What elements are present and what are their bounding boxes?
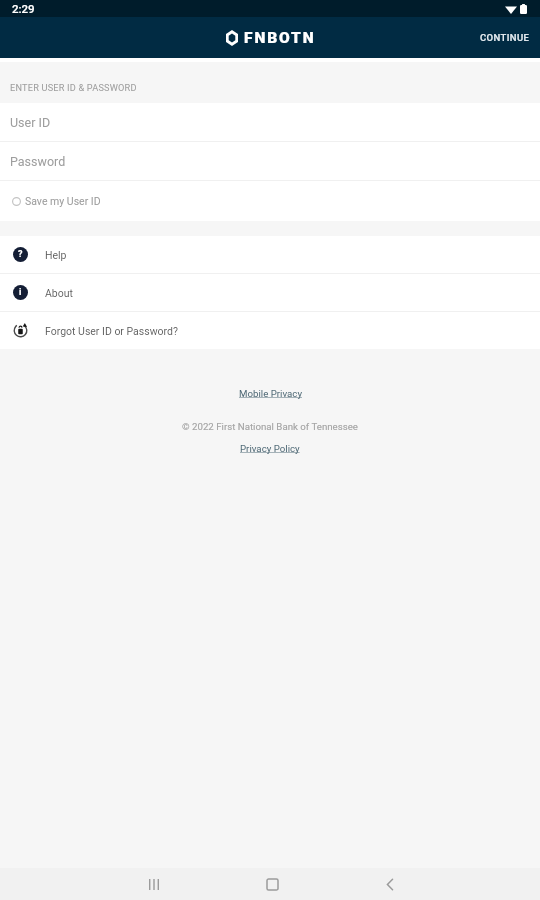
button[interactable]: User ID [0,103,540,141]
button[interactable]: Home [259,871,285,897]
button[interactable]: ? [0,236,540,273]
staticText: i [19,287,22,298]
button[interactable]: Password [0,142,540,180]
staticText: © 2022 First National Bank of Tennessee [182,421,359,432]
button[interactable]: Forgot User ID or Password? [0,312,540,349]
staticText: FNBOTN [244,29,316,47]
staticText: About [45,287,73,299]
staticText: Save my User ID [25,195,101,207]
button[interactable]: CONTINUE [470,23,540,52]
staticText: CONTINUE [480,32,530,43]
staticText: Forgot User ID or Password? [45,325,178,337]
staticText: ? [18,249,23,260]
staticText: ENTER USER ID & PASSWORD [10,82,137,93]
button[interactable]: Back [377,871,403,897]
button[interactable]: i [0,274,540,311]
staticText: Password [10,154,66,169]
button[interactable]: Mobile Privacy [239,388,302,399]
button[interactable]: Save my User ID [0,181,540,221]
staticText: User ID [10,115,51,130]
staticText: Help [45,249,67,261]
button[interactable]: Privacy Policy [240,443,300,454]
staticText: 2:29 [12,2,35,15]
button[interactable]: Recents [141,871,167,897]
